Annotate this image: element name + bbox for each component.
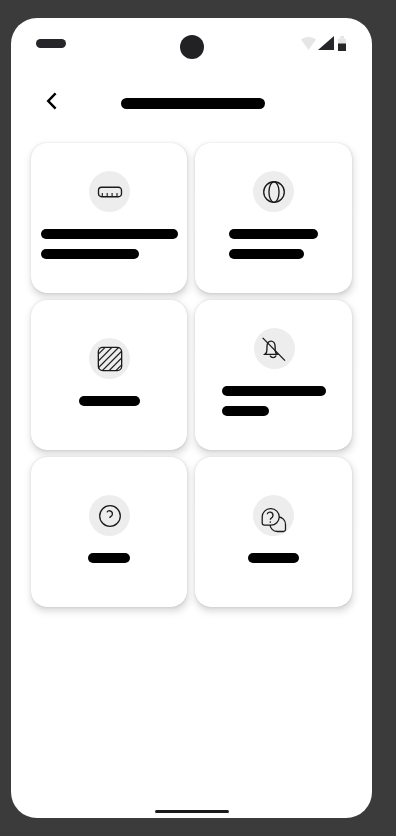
button[interactable]: Notifications	[195, 300, 352, 450]
button[interactable]: Connection	[31, 143, 187, 293]
button[interactable]: Wallpaper	[31, 300, 187, 450]
button[interactable]: Support	[195, 457, 352, 607]
button[interactable]: Language	[195, 143, 352, 293]
button[interactable]: Back	[35, 85, 67, 117]
button[interactable]: Help	[31, 457, 187, 607]
